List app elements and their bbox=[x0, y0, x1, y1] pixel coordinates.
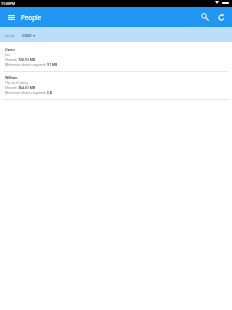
button[interactable]: Refresh bbox=[215, 11, 227, 23]
button[interactable]: William bbox=[0, 70, 232, 98]
staticText: People bbox=[21, 13, 42, 22]
staticText: Shared: 364.61 MB bbox=[5, 85, 36, 90]
staticText: Owen bbox=[5, 47, 15, 52]
staticText: The art of giving bbox=[5, 81, 29, 85]
staticText: William bbox=[5, 75, 18, 80]
staticText: Minimum share required: 91 MB bbox=[5, 62, 58, 67]
staticText: ENAME bbox=[22, 34, 32, 38]
staticText: Shared: 720.93 MB bbox=[5, 57, 36, 62]
staticText: Minimum share required: 6 B bbox=[5, 90, 53, 95]
staticText: 11:00PM bbox=[1, 1, 16, 6]
button[interactable]: Open navigation menu bbox=[5, 11, 17, 23]
button[interactable]: Owen bbox=[0, 42, 232, 70]
staticText: Sort by bbox=[5, 34, 15, 38]
staticText: Leo bbox=[5, 53, 11, 57]
button[interactable]: Sort by bbox=[0, 27, 232, 42]
button[interactable]: Search bbox=[199, 11, 211, 23]
